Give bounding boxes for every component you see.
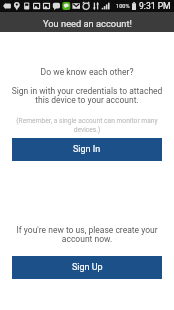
staticText: If you're new to us, please create your … [14, 225, 160, 244]
button[interactable]: Sign In [12, 138, 162, 161]
staticText: 100% [116, 3, 130, 10]
staticText: (Remember, a single account can monitor … [14, 117, 160, 133]
staticText: You need an account! [43, 18, 132, 29]
staticText: 9:31 PM [139, 1, 171, 11]
staticText: Sign In [73, 144, 101, 155]
staticText: Do we know each other? [0, 67, 174, 77]
button[interactable]: Sign Up [12, 256, 162, 279]
staticText: Sign Up [72, 262, 103, 273]
staticText: Sign in with your credentials to attache… [9, 86, 165, 105]
